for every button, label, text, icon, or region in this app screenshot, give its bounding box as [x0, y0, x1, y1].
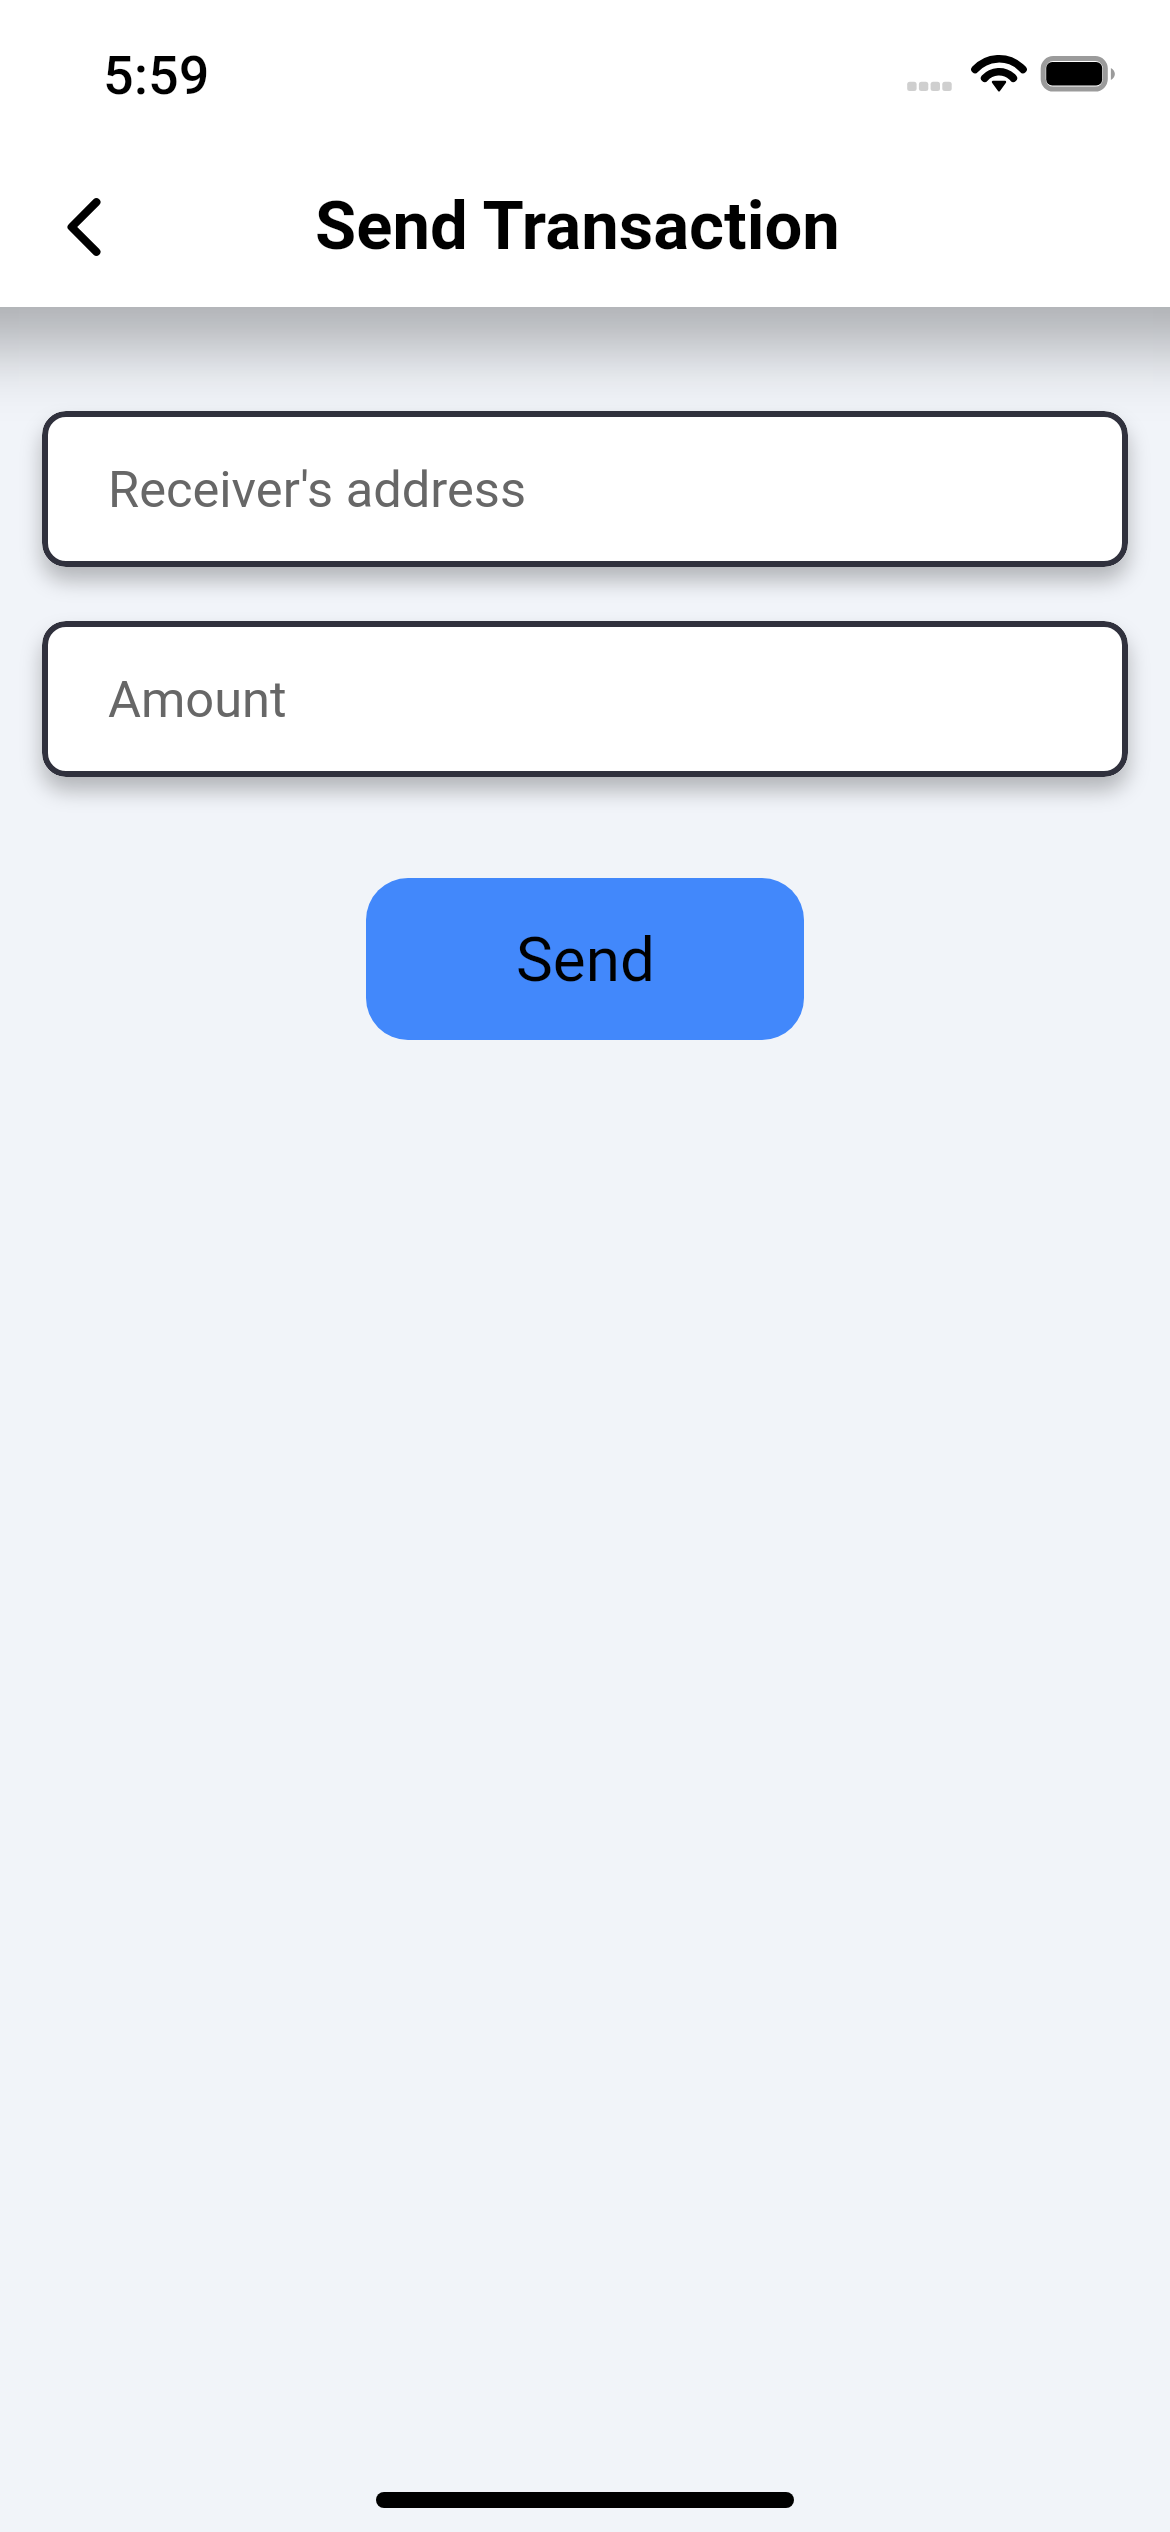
staticText: Send Transaction [315, 187, 840, 266]
button[interactable]: Back [40, 183, 128, 271]
button[interactable]: Send [366, 878, 804, 1040]
staticText: Amount [108, 670, 287, 729]
other: Signal, Wi-Fi and battery status [900, 50, 1120, 100]
staticText: 5:59 [103, 44, 210, 107]
staticText: Receiver's address [108, 460, 527, 519]
staticText: Send [516, 923, 655, 996]
button[interactable]: Receiver's address [42, 411, 1128, 567]
button[interactable]: Amount [42, 621, 1128, 777]
